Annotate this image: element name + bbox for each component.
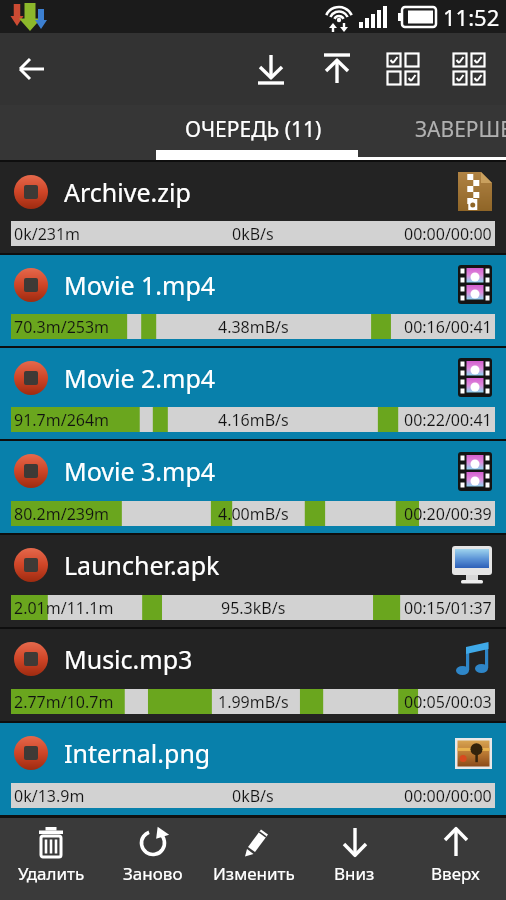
button[interactable] (436, 33, 502, 105)
staticText: 70.3m/253m (14, 316, 110, 338)
staticText: Movie 3.mp4 (64, 454, 458, 488)
button[interactable]: Изменить (203, 818, 304, 900)
staticText: Internal.png (64, 736, 455, 770)
button[interactable] (14, 642, 48, 676)
staticText: 1.99mB/s (218, 691, 289, 713)
staticText: 95.3kB/s (221, 597, 286, 619)
staticText: 00:15/01:37 (404, 597, 492, 619)
staticText: 4.00mB/s (218, 503, 289, 525)
staticText: 4.16mB/s (218, 409, 289, 431)
button[interactable] (14, 175, 48, 209)
button[interactable] (14, 736, 48, 770)
staticText: 00:00/00:00 (404, 785, 492, 807)
button[interactable]: Вверх (405, 818, 506, 900)
button[interactable] (14, 454, 48, 488)
button[interactable]: Archive.zip (0, 162, 506, 253)
staticText: ОЧЕРЕДЬ (11) (185, 115, 322, 144)
staticText: 4.38mB/s (218, 316, 289, 338)
staticText: Music.mp3 (64, 642, 454, 676)
staticText: Удалить (18, 862, 85, 885)
button[interactable]: Вниз (304, 818, 405, 900)
staticText: 2.01m/11.1m (14, 597, 114, 619)
button[interactable] (0, 33, 64, 105)
button[interactable]: Удалить (0, 818, 102, 900)
staticText: 11:52 (443, 2, 500, 32)
button[interactable]: Internal.png (0, 723, 506, 815)
staticText: 00:20/00:39 (404, 503, 492, 525)
button[interactable]: Movie 2.mp4 (0, 348, 506, 439)
button[interactable] (238, 33, 304, 105)
button[interactable] (14, 548, 48, 582)
staticText: 0k/231m (14, 223, 81, 245)
staticText: Вниз (334, 862, 375, 885)
staticText: 00:05/00:03 (404, 691, 492, 713)
staticText: 91.7m/264m (14, 409, 110, 431)
staticText: Launcher.apk (64, 548, 452, 582)
button[interactable]: Movie 3.mp4 (0, 441, 506, 533)
button[interactable] (304, 33, 370, 105)
staticText: 0kB/s (232, 785, 274, 807)
staticText: Изменить (213, 862, 295, 885)
staticText: Заново (123, 862, 183, 885)
button[interactable]: Movie 1.mp4 (0, 255, 506, 346)
staticText: 00:16/00:41 (404, 316, 492, 338)
staticText: 2.77m/10.7m (14, 691, 114, 713)
staticText: Вверх (431, 862, 480, 885)
button[interactable] (14, 268, 48, 302)
staticText: 0kB/s (232, 223, 274, 245)
button[interactable]: Music.mp3 (0, 629, 506, 721)
staticText: ЗАВЕРШЕНО (415, 115, 506, 144)
staticText: 00:22/00:41 (404, 409, 492, 431)
staticText: Archive.zip (64, 175, 458, 209)
button[interactable]: Launcher.apk (0, 535, 506, 627)
staticText: 80.2m/239m (14, 503, 110, 525)
staticText: 0k/13.9m (14, 785, 85, 807)
button[interactable]: Заново (102, 818, 203, 900)
staticText: Movie 1.mp4 (64, 268, 458, 302)
staticText: 00:00/00:00 (404, 223, 492, 245)
staticText: Movie 2.mp4 (64, 361, 458, 395)
button[interactable] (14, 361, 48, 395)
button[interactable] (370, 33, 436, 105)
